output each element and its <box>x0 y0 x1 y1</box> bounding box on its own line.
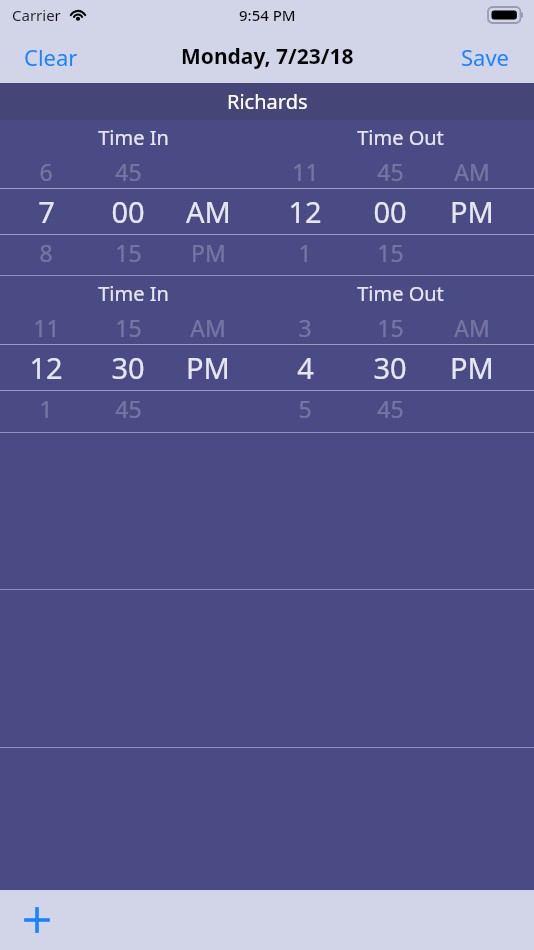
staticText: AM <box>186 192 231 231</box>
staticText: 00 <box>373 192 407 231</box>
staticText: 11 <box>33 312 60 343</box>
button[interactable]: Save <box>437 30 534 83</box>
staticText: 8 <box>39 237 53 268</box>
staticText: 9:54 PM <box>239 5 296 25</box>
staticText: 00 <box>111 192 145 231</box>
staticText: PM <box>450 192 494 231</box>
staticText: 45 <box>115 393 142 424</box>
staticText: 1 <box>298 237 312 268</box>
staticText: 30 <box>111 348 145 387</box>
staticText: Carrier <box>12 5 61 25</box>
staticText: 30 <box>373 348 407 387</box>
staticText: Time In <box>98 280 169 307</box>
staticText: 7 <box>38 192 55 231</box>
staticText: Time In <box>98 124 169 151</box>
staticText: Monday, 7/23/18 <box>181 42 354 71</box>
staticText: 15 <box>115 312 142 343</box>
staticText: Time Out <box>357 280 444 307</box>
staticText: PM <box>450 348 494 387</box>
staticText: Clear <box>24 42 78 72</box>
staticText: 6 <box>39 156 53 187</box>
staticText: 45 <box>377 156 404 187</box>
staticText: 15 <box>377 312 404 343</box>
button[interactable]: Add entry <box>10 893 64 947</box>
staticText: Richards <box>227 88 308 115</box>
staticText: 15 <box>115 237 142 268</box>
staticText: AM <box>190 312 226 343</box>
staticText: Time Out <box>357 124 444 151</box>
staticText: Save <box>461 42 510 72</box>
staticText: PM <box>191 237 226 268</box>
staticText: 12 <box>29 348 63 387</box>
staticText: 3 <box>298 312 312 343</box>
staticText: 12 <box>288 192 322 231</box>
staticText: 5 <box>298 393 312 424</box>
button[interactable]: Time In <box>0 276 534 432</box>
staticText: 45 <box>377 393 404 424</box>
staticText: AM <box>454 312 490 343</box>
button[interactable]: Clear <box>0 30 102 83</box>
button[interactable]: Richards <box>0 83 534 120</box>
staticText: PM <box>186 348 230 387</box>
staticText: 1 <box>39 393 53 424</box>
staticText: 45 <box>115 156 142 187</box>
staticText: 11 <box>292 156 319 187</box>
staticText: 15 <box>377 237 404 268</box>
button[interactable]: Time In <box>0 120 534 275</box>
staticText: 4 <box>297 348 314 387</box>
staticText: AM <box>454 156 490 187</box>
